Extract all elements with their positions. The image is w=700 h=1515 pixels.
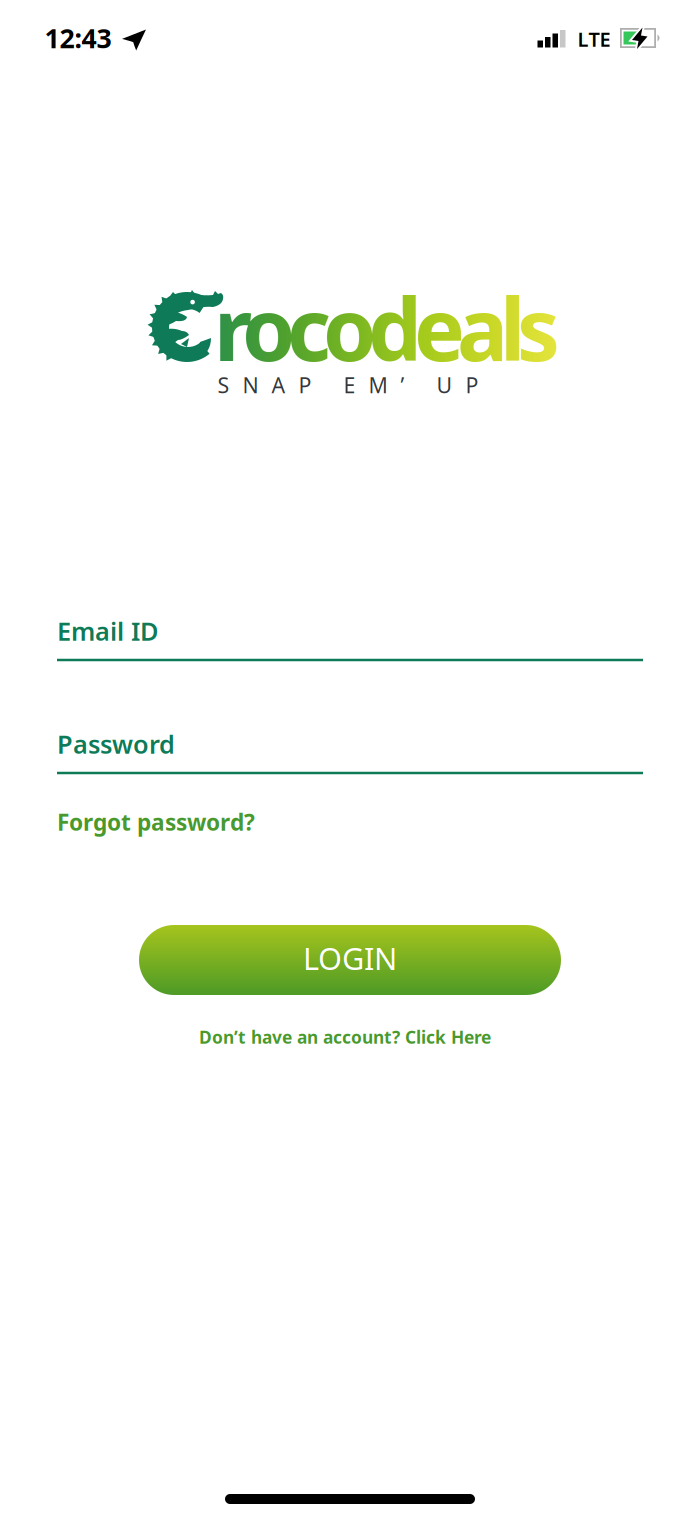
staticText: Email ID (57, 614, 159, 648)
staticText: SNAP EM’ UP (217, 371, 478, 399)
button[interactable]: Forgot password? (57, 807, 643, 837)
button[interactable]: Don’t have an account? Click Here (199, 1025, 491, 1048)
staticText: LTE (577, 26, 610, 52)
staticText: Forgot password? (57, 807, 255, 837)
staticText: Password (57, 727, 175, 761)
staticText: LOGIN (303, 938, 397, 978)
staticText: Don’t have an account? Click Here (199, 1025, 491, 1048)
button[interactable]: LOGIN (139, 925, 561, 995)
staticText: 12:43 (44, 20, 111, 56)
